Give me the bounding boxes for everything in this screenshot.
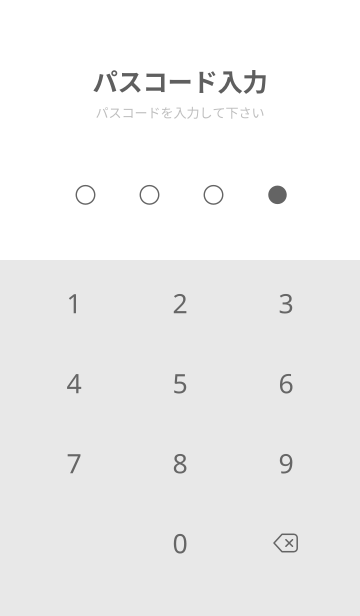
button[interactable]: 3 bbox=[233, 263, 339, 343]
staticText: 4 bbox=[66, 365, 81, 401]
button[interactable]: 6 bbox=[233, 343, 339, 423]
staticText: 6 bbox=[278, 365, 293, 401]
button[interactable]: 5 bbox=[127, 343, 233, 423]
staticText: パスコードを入力して下さい bbox=[95, 103, 264, 122]
button[interactable]: 2 bbox=[127, 263, 233, 343]
staticText: パスコード入力 bbox=[92, 62, 267, 99]
button[interactable]: 9 bbox=[233, 423, 339, 503]
staticText: 5 bbox=[172, 365, 187, 401]
button[interactable]: 8 bbox=[127, 423, 233, 503]
button[interactable]: 0 bbox=[127, 503, 233, 583]
staticText: 3 bbox=[278, 285, 293, 321]
button[interactable]: Delete bbox=[233, 503, 339, 583]
staticText: 8 bbox=[172, 445, 187, 481]
staticText: 2 bbox=[172, 285, 187, 321]
staticText: 0 bbox=[172, 525, 187, 561]
staticText: 9 bbox=[278, 445, 293, 481]
staticText: 7 bbox=[66, 445, 81, 481]
button[interactable]: 4 bbox=[21, 343, 127, 423]
button[interactable]: 1 bbox=[21, 263, 127, 343]
staticText: 1 bbox=[66, 285, 81, 321]
button[interactable]: 7 bbox=[21, 423, 127, 503]
